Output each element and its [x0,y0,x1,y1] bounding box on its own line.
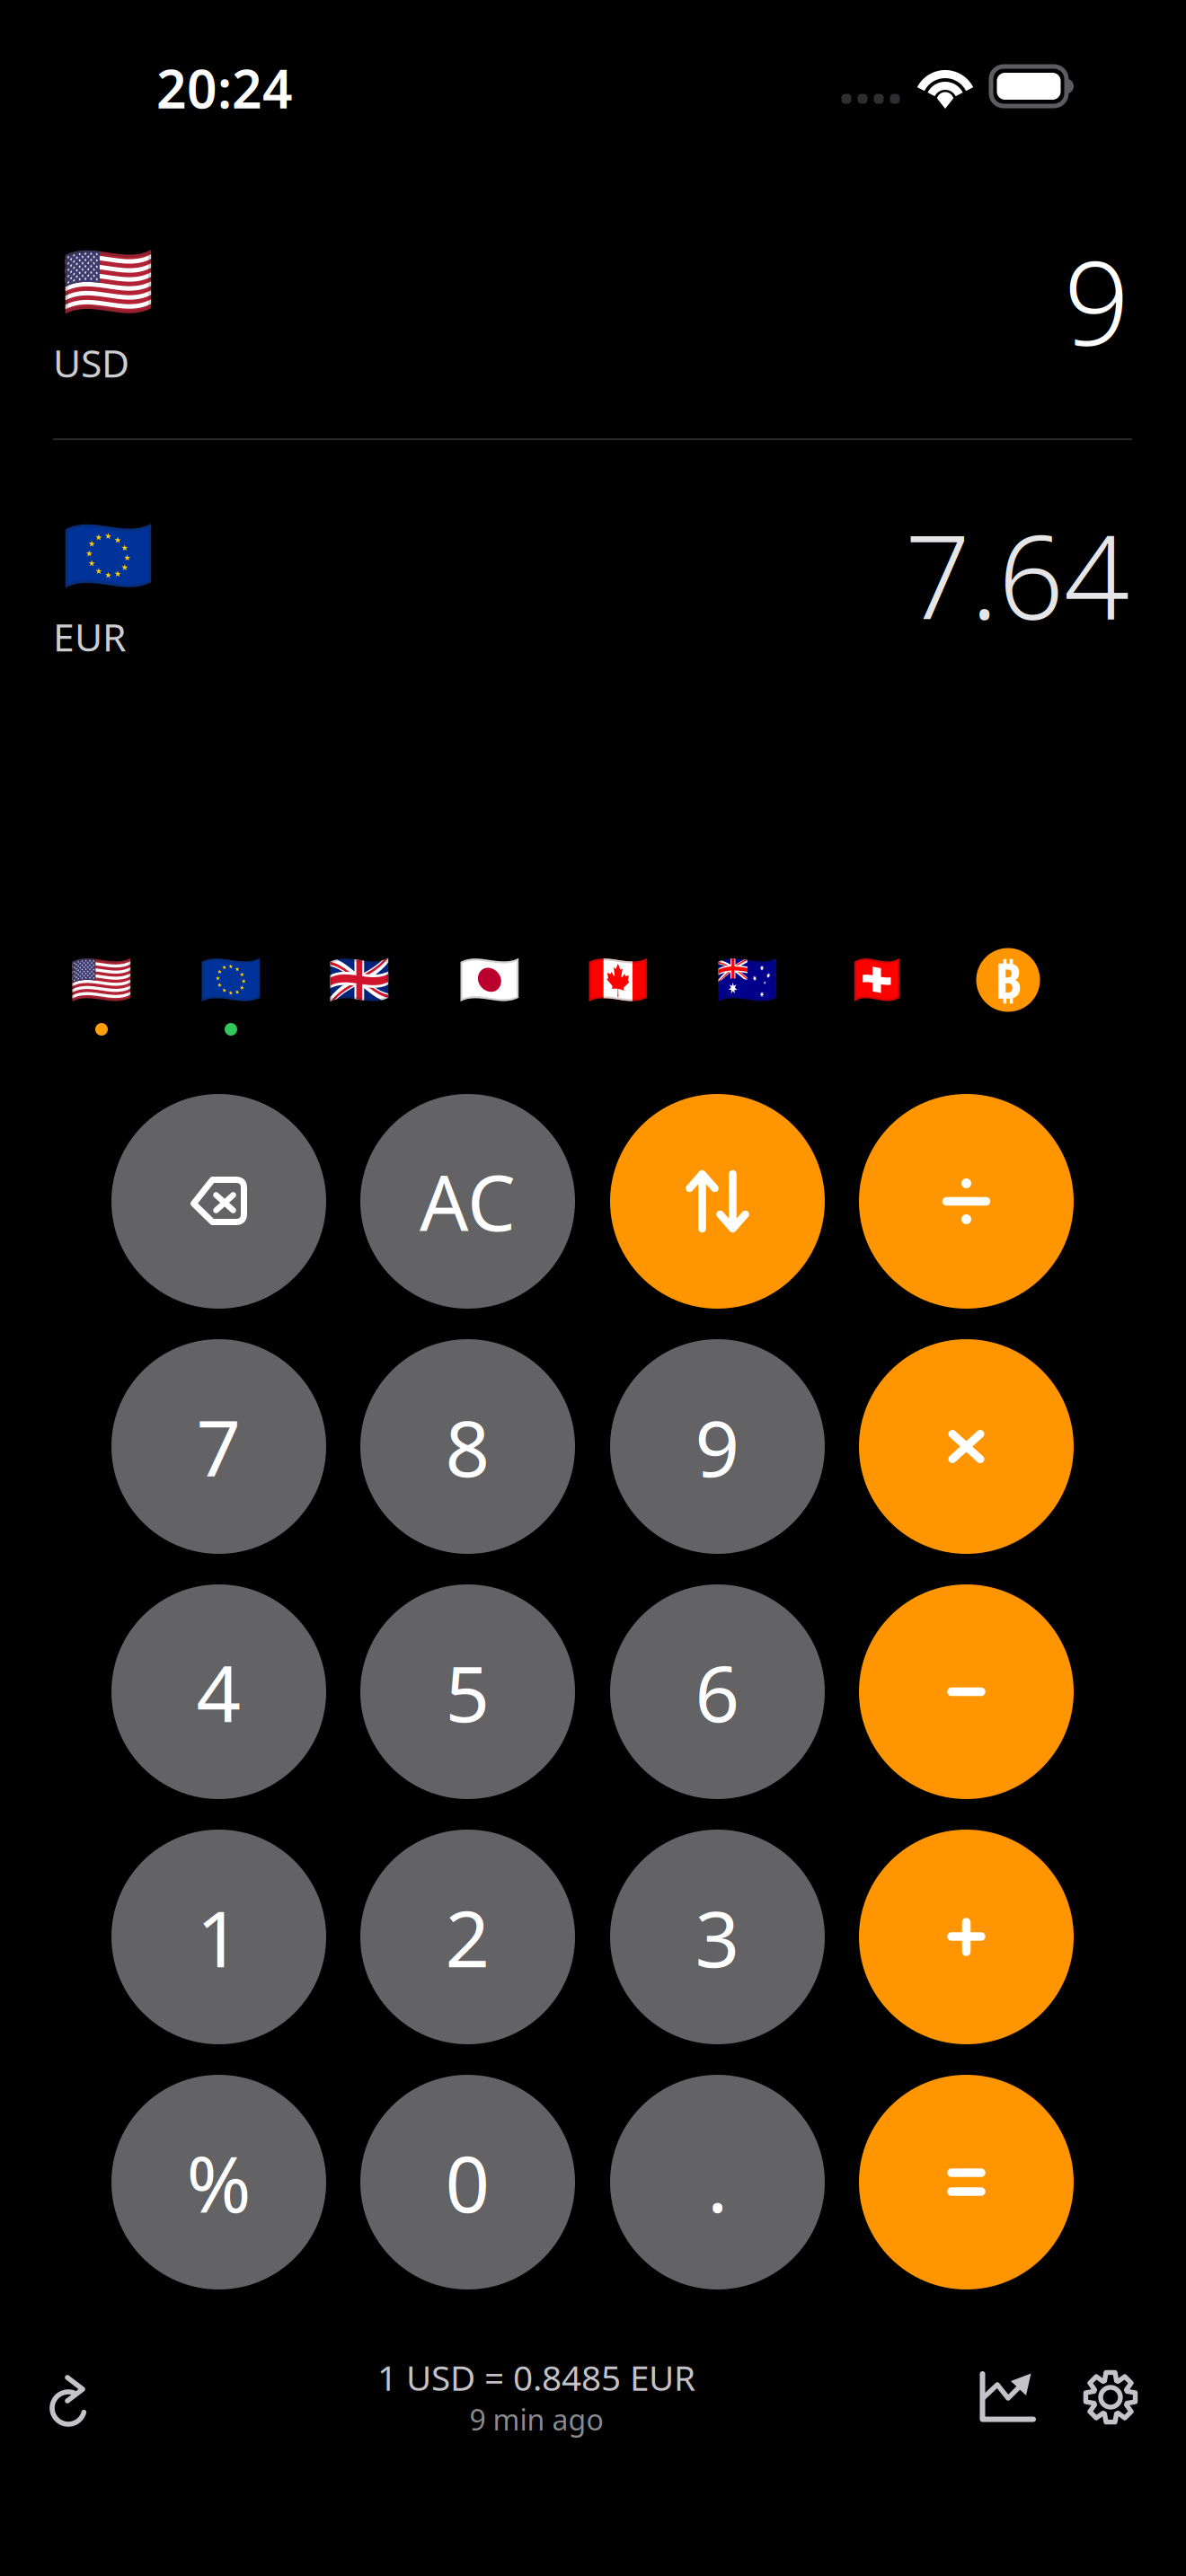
button[interactable]: Plus [859,1830,1074,2044]
staticText: 3 [695,1885,740,1989]
button[interactable]: Minus [859,1584,1074,1799]
button[interactable]: 🇺🇸 [0,235,1186,415]
staticText: 1 [196,1885,241,1989]
button[interactable]: 🇺🇸 [46,926,157,1034]
button[interactable]: 8 [360,1339,575,1554]
staticText: 🇨🇦 [587,951,650,1009]
button[interactable]: Refresh rates [50,2376,90,2426]
button[interactable]: % [111,2075,326,2289]
button[interactable]: 4 [111,1584,326,1799]
button[interactable]: 🇨🇭 [821,926,933,1034]
button[interactable]: 3 [610,1830,825,2044]
staticText: 🇺🇸 [62,240,155,325]
staticText: 1 USD = 0.8485 EUR [377,2354,695,2400]
button[interactable]: 🇯🇵 [434,926,545,1034]
staticText: AC [420,1150,516,1252]
button[interactable]: 🇬🇧 [304,926,415,1034]
staticText: 6 [695,1640,740,1743]
staticText: USD [53,337,129,388]
button[interactable]: Swap currencies [610,1094,825,1309]
staticText: 8 [445,1395,490,1498]
button[interactable]: Rate chart [979,2371,1037,2423]
staticText: 7.64 [905,498,1129,651]
button[interactable]: AC [360,1094,575,1309]
button[interactable]: 2 [360,1830,575,2044]
button[interactable]: 1 [111,1830,326,2044]
staticText: 20:24 [156,53,293,123]
button[interactable]: 🇪🇺 [175,926,287,1034]
staticText: . [707,2130,728,2234]
button[interactable]: . [610,2075,825,2289]
button[interactable]: 9 [610,1339,825,1554]
staticText: 🇯🇵 [458,951,521,1009]
staticText: 🇺🇸 [70,951,133,1009]
button[interactable]: 🇦🇺 [692,926,803,1034]
button[interactable]: Settings [1083,2369,1138,2425]
staticText: 🇦🇺 [716,951,779,1009]
button[interactable]: 6 [610,1584,825,1799]
staticText: 0 [445,2130,490,2234]
button[interactable]: Divide [859,1094,1074,1309]
staticText: 🇪🇺 [62,514,155,599]
staticText: 9 [695,1395,740,1498]
staticText: 7 [196,1395,241,1498]
button[interactable]: Delete [111,1094,326,1309]
staticText: 9 min ago [469,2400,603,2438]
staticText: 4 [196,1640,241,1743]
staticText: ₿ [994,948,1022,1012]
staticText: 5 [445,1640,490,1743]
button[interactable]: 5 [360,1584,575,1799]
button[interactable]: Equals [859,2075,1074,2289]
staticText: 2 [445,1885,490,1989]
button[interactable]: Bitcoin [976,948,1040,1012]
staticText: 🇨🇭 [845,951,908,1009]
button[interactable]: 🇪🇺 [0,509,1186,689]
staticText: EUR [53,611,127,662]
button[interactable]: 🇨🇦 [562,926,674,1034]
button[interactable]: Multiply [859,1339,1074,1554]
staticText: 🇪🇺 [199,951,262,1009]
staticText: % [186,2130,251,2234]
button[interactable]: 0 [360,2075,575,2289]
staticText: 🇬🇧 [328,951,391,1009]
staticText: 9 [1064,225,1129,377]
button[interactable]: 7 [111,1339,326,1554]
